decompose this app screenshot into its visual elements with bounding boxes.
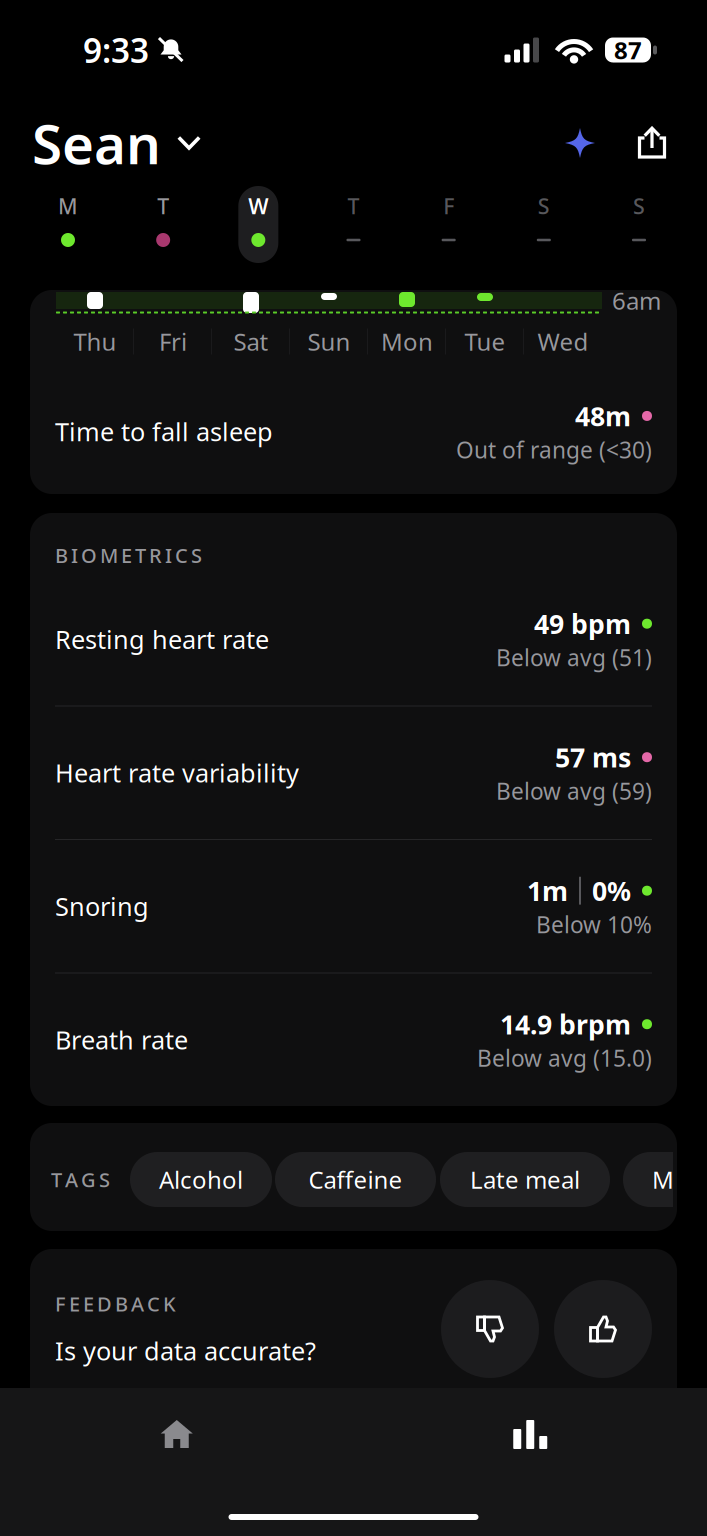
staticText: 14.9 brpm bbox=[500, 1006, 631, 1042]
staticText: Heart rate variability bbox=[55, 756, 299, 789]
button[interactable]: Late meal bbox=[440, 1152, 610, 1207]
staticText: G bbox=[81, 1166, 96, 1193]
staticText: 57 ms bbox=[555, 739, 631, 775]
staticText: 87 bbox=[614, 34, 642, 66]
staticText: F bbox=[443, 192, 454, 220]
button[interactable]: Sean bbox=[0, 95, 213, 191]
button[interactable]: S bbox=[524, 186, 564, 263]
staticText: D bbox=[97, 1290, 112, 1317]
staticText: S bbox=[633, 192, 645, 220]
staticText: W bbox=[248, 192, 268, 220]
staticText: B bbox=[55, 542, 68, 569]
staticText: C bbox=[147, 1290, 160, 1317]
button[interactable]: W bbox=[238, 186, 278, 263]
staticText: Thu bbox=[73, 326, 116, 357]
button[interactable]: Me bbox=[623, 1152, 707, 1207]
staticText: Mon bbox=[381, 326, 433, 357]
button[interactable]: AI insights bbox=[551, 114, 609, 172]
staticText: E bbox=[69, 1290, 80, 1317]
staticText: M bbox=[100, 542, 118, 569]
staticText: 9:33 bbox=[83, 28, 149, 72]
staticText: Sean bbox=[32, 107, 161, 179]
staticText: I bbox=[165, 542, 172, 569]
staticText: F bbox=[55, 1290, 66, 1317]
staticText: T bbox=[157, 192, 169, 220]
staticText: S bbox=[538, 192, 550, 220]
button[interactable]: Trends bbox=[353, 1401, 707, 1467]
staticText: Late meal bbox=[470, 1164, 580, 1195]
button[interactable]: Home bbox=[0, 1401, 353, 1467]
staticText: E bbox=[83, 1290, 94, 1317]
staticText: Alcohol bbox=[159, 1164, 243, 1195]
staticText: A bbox=[65, 1166, 78, 1193]
staticText: 1m bbox=[527, 873, 568, 908]
staticText: Caffeine bbox=[308, 1164, 402, 1195]
button[interactable]: S bbox=[619, 186, 659, 263]
staticText: T bbox=[51, 1166, 62, 1193]
staticText: R bbox=[149, 542, 162, 569]
button[interactable]: F bbox=[429, 186, 469, 263]
button[interactable]: Thumbs down bbox=[441, 1280, 539, 1378]
staticText: Below avg (59) bbox=[496, 776, 652, 806]
staticText: S bbox=[191, 542, 202, 569]
staticText: K bbox=[163, 1290, 176, 1317]
staticText: T bbox=[135, 542, 146, 569]
staticText: 48m bbox=[575, 398, 631, 434]
staticText: Sun bbox=[307, 326, 350, 357]
staticText: Resting heart rate bbox=[55, 622, 269, 656]
button[interactable]: Caffeine bbox=[275, 1152, 436, 1207]
staticText: C bbox=[175, 542, 188, 569]
staticText: Time to fall asleep bbox=[55, 415, 273, 448]
staticText: Breath rate bbox=[55, 1023, 188, 1056]
staticText: Sat bbox=[233, 326, 268, 357]
button[interactable]: Thumbs up bbox=[554, 1280, 652, 1378]
staticText: Out of range (<30) bbox=[456, 435, 652, 465]
staticText: 6am bbox=[612, 285, 661, 316]
button[interactable]: Share bbox=[623, 113, 681, 173]
staticText: B bbox=[115, 1290, 128, 1317]
staticText: S bbox=[99, 1166, 110, 1193]
staticText: M bbox=[58, 192, 78, 220]
staticText: A bbox=[131, 1290, 144, 1317]
staticText: I bbox=[71, 542, 78, 569]
staticText: Wed bbox=[537, 326, 588, 357]
staticText: 0% bbox=[592, 873, 631, 908]
staticText: E bbox=[121, 542, 132, 569]
staticText: 49 bpm bbox=[534, 606, 631, 641]
staticText: Is your data accurate? bbox=[55, 1334, 316, 1368]
button[interactable]: T bbox=[143, 186, 183, 263]
staticText: Below avg (15.0) bbox=[477, 1043, 652, 1073]
staticText: Fri bbox=[159, 326, 187, 357]
button[interactable]: T bbox=[333, 186, 373, 263]
staticText: Below 10% bbox=[536, 909, 652, 939]
staticText: Me bbox=[652, 1164, 688, 1195]
staticText: T bbox=[347, 192, 359, 220]
staticText: O bbox=[81, 542, 97, 569]
staticText: Tue bbox=[464, 326, 505, 357]
staticText: Snoring bbox=[55, 889, 149, 923]
button[interactable]: M bbox=[48, 186, 88, 263]
button[interactable]: Alcohol bbox=[130, 1152, 272, 1207]
staticText: Below avg (51) bbox=[496, 642, 652, 672]
